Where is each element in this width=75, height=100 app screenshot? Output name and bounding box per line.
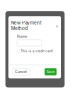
staticText: Cancel [15,70,27,74]
button[interactable]: Save [45,68,57,75]
button[interactable]: Close [55,23,58,29]
button[interactable]: Cancel [13,68,29,75]
staticText: × [55,23,58,29]
staticText: This is a credit card [20,49,52,53]
staticText: Save [47,70,55,74]
staticText: Name [17,34,27,39]
staticText: New Payment Method [11,20,41,31]
